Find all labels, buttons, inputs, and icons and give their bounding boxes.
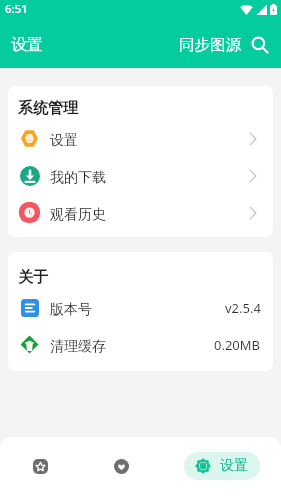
button[interactable]: 设置 (184, 452, 260, 480)
button[interactable]: Favorites (81, 437, 162, 495)
staticText: 关于 (18, 268, 48, 287)
staticText: 设置 (50, 132, 78, 150)
button[interactable]: 版本号 (8, 289, 273, 326)
staticText: 我的下载 (50, 169, 106, 187)
button[interactable]: 清理缓存 (8, 326, 273, 363)
button[interactable]: 同步图源 (177, 30, 243, 60)
staticText: 版本号 (50, 301, 92, 319)
button[interactable]: 我的下载 (8, 157, 273, 194)
staticText: 6:51 (5, 1, 28, 17)
staticText: 设置 (11, 35, 43, 55)
staticText: 清理缓存 (50, 338, 106, 356)
button[interactable]: Search (246, 31, 274, 59)
staticText: 0.20MB (214, 336, 261, 354)
button[interactable]: 观看历史 (8, 194, 273, 231)
staticText: 同步图源 (179, 35, 241, 55)
button[interactable]: 设置 (8, 120, 273, 157)
staticText: v2.5.4 (225, 299, 261, 317)
staticText: 设置 (220, 457, 248, 475)
button[interactable]: Collections (0, 437, 81, 495)
staticText: 观看历史 (50, 206, 106, 224)
staticText: 系统管理 (18, 99, 78, 118)
